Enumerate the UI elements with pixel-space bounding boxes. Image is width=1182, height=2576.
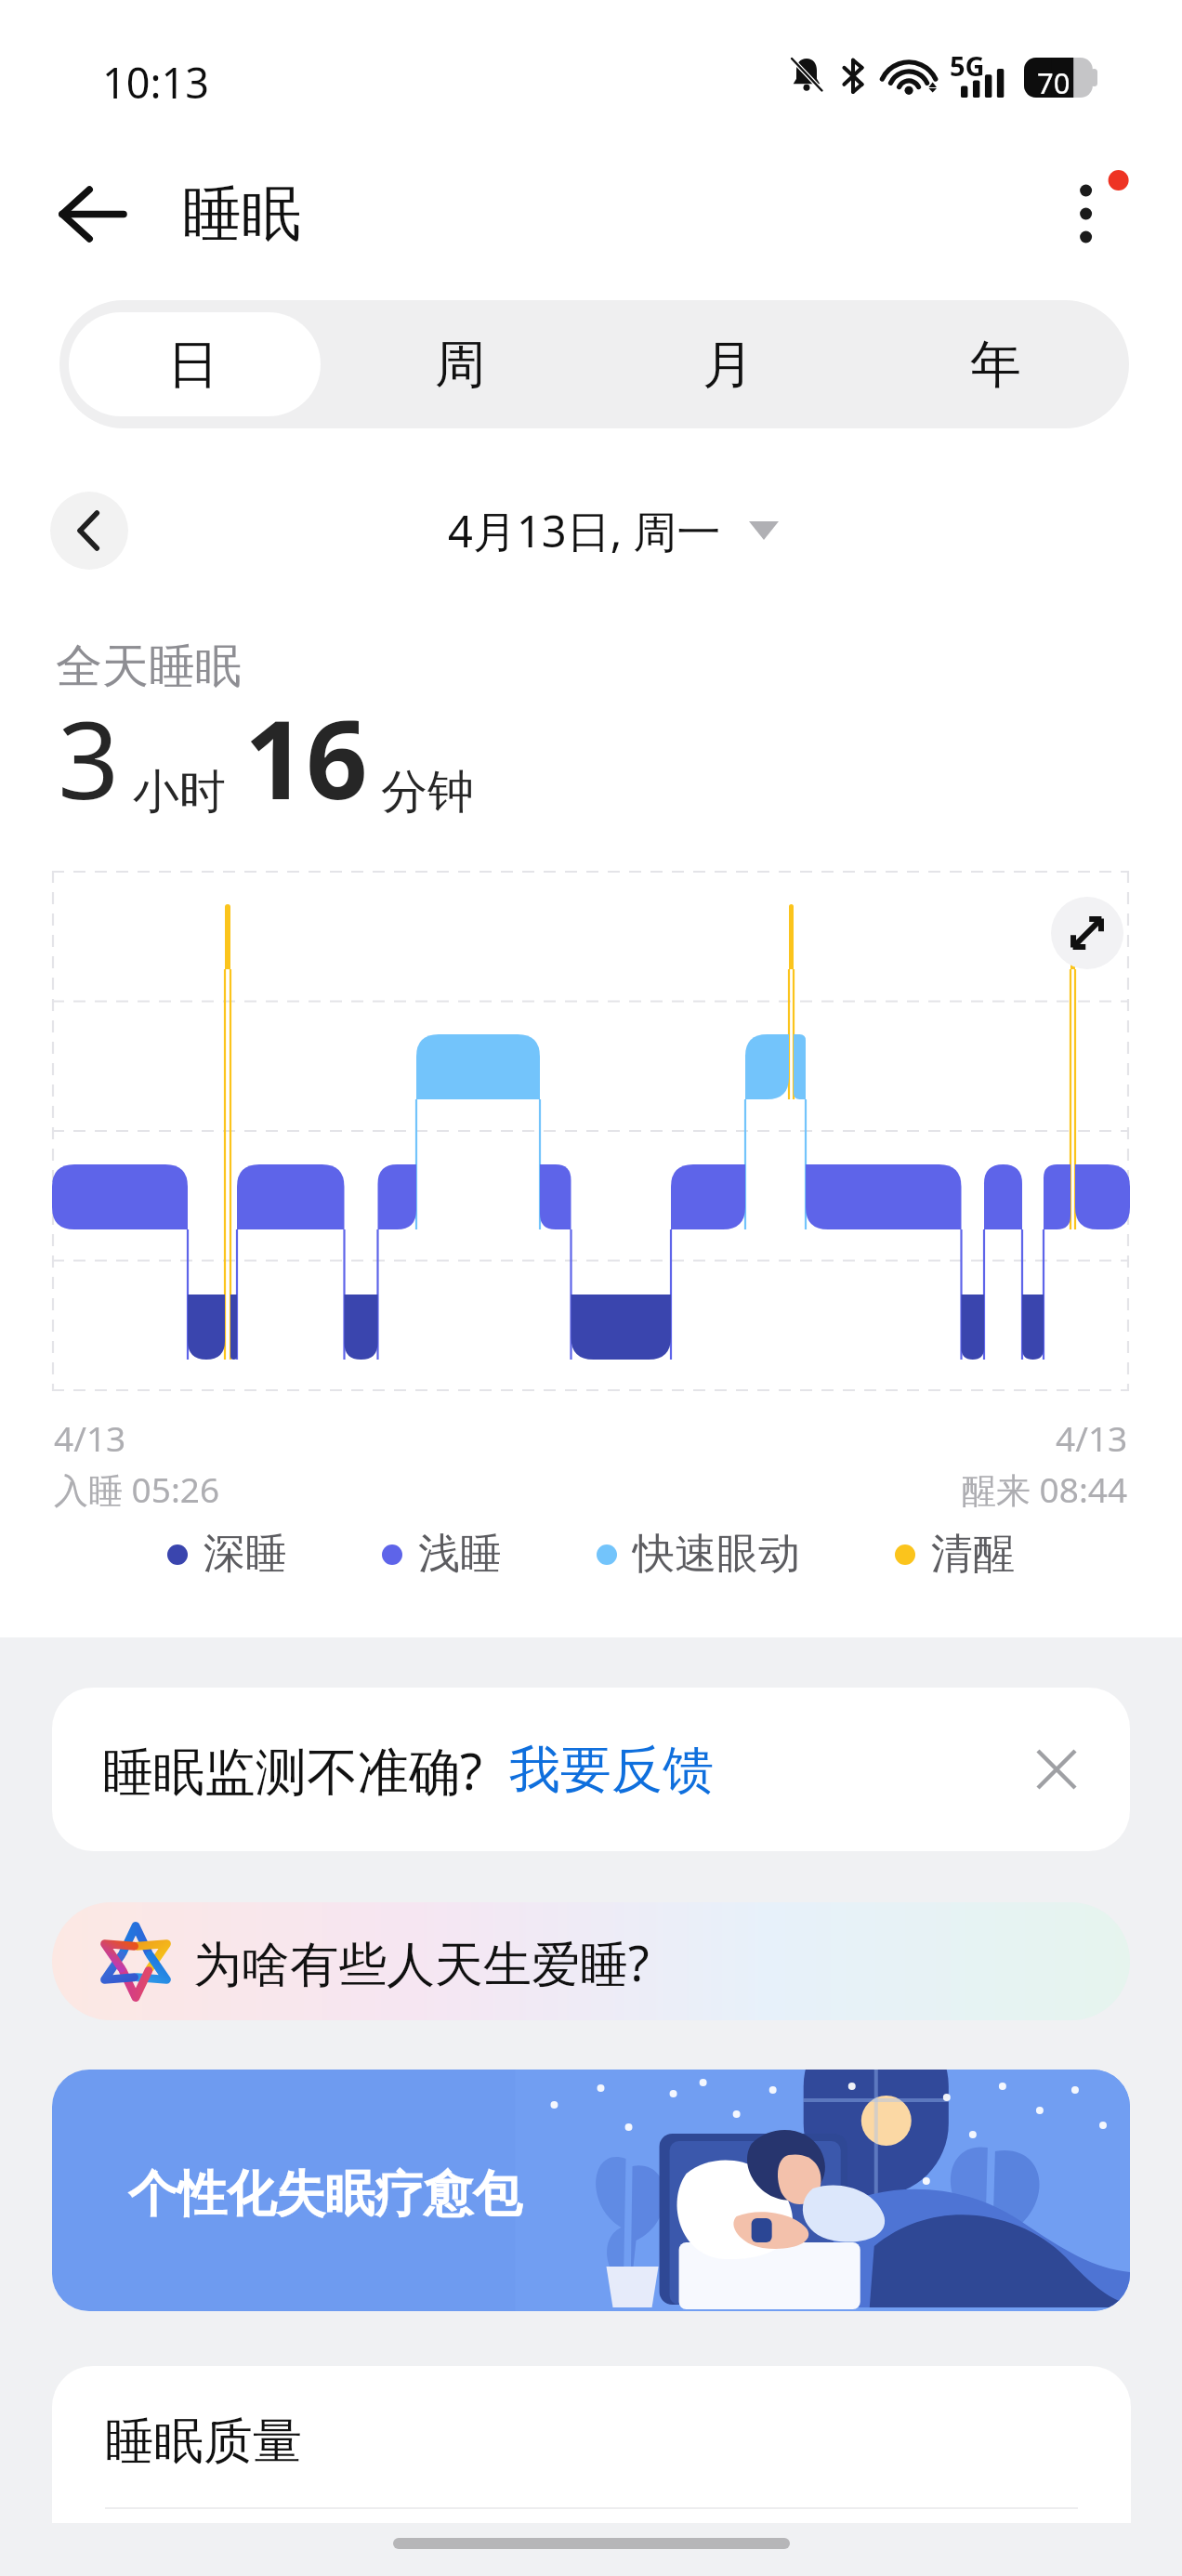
button[interactable]: 年 [861, 300, 1129, 428]
staticText: 深睡 [204, 1528, 287, 1581]
button[interactable]: Back [37, 159, 147, 269]
staticText: 入睡 05:26 [54, 1465, 220, 1513]
button[interactable]: 个性化失眠疗愈包 [52, 2070, 1130, 2311]
button[interactable]: 为啥有些人天生爱睡? [52, 1902, 1130, 2020]
button[interactable]: Previous day [50, 492, 128, 570]
staticText: 我要反馈 [509, 1738, 714, 1802]
staticText: 全天睡眠 [56, 637, 242, 696]
staticText: 4/13 [1056, 1414, 1128, 1461]
staticText: 睡眠 [182, 177, 301, 252]
staticText: 4月13日, 周一 [448, 501, 721, 560]
staticText: 3 [58, 684, 120, 831]
staticText: 分钟 [381, 763, 474, 821]
button[interactable]: 深睡 [167, 1528, 287, 1581]
staticText: 为啥有些人天生爱睡? [193, 1929, 650, 1995]
button[interactable]: 日 [59, 300, 326, 428]
button[interactable]: 月 [594, 300, 861, 428]
button[interactable]: Expand chart [1051, 897, 1123, 969]
staticText: 快速眼动 [633, 1528, 800, 1581]
staticText: 4/13 [54, 1414, 126, 1461]
button[interactable]: 4月13日, 周一 [448, 501, 779, 560]
staticText: 个性化失眠疗愈包 [128, 2163, 522, 2226]
staticText: 醒来 08:44 [962, 1465, 1128, 1513]
staticText: 睡眠质量 [105, 2411, 302, 2473]
staticText: 月 [703, 333, 754, 397]
staticText: 日 [167, 333, 218, 397]
staticText: 年 [970, 333, 1021, 397]
staticText: 周 [435, 333, 486, 397]
button[interactable]: 快速眼动 [597, 1528, 800, 1581]
staticText: 70 [1037, 63, 1070, 102]
button[interactable]: 周 [326, 300, 594, 428]
button[interactable]: Dismiss [1019, 1732, 1094, 1807]
button[interactable]: 睡眠质量 [52, 2366, 1131, 2523]
staticText: 睡眠监测不准确? [102, 1735, 509, 1805]
staticText: 16 [244, 684, 368, 831]
button[interactable]: 睡眠监测不准确? [52, 1688, 1130, 1851]
button[interactable]: 浅睡 [382, 1528, 502, 1581]
staticText: 5G [950, 47, 985, 84]
button[interactable]: 清醒 [895, 1528, 1015, 1581]
staticText: 浅睡 [418, 1528, 502, 1581]
button[interactable]: More options [1043, 163, 1145, 265]
staticText: 10:13 [102, 54, 210, 111]
staticText: 小时 [133, 763, 226, 821]
staticText: 清醒 [931, 1528, 1015, 1581]
